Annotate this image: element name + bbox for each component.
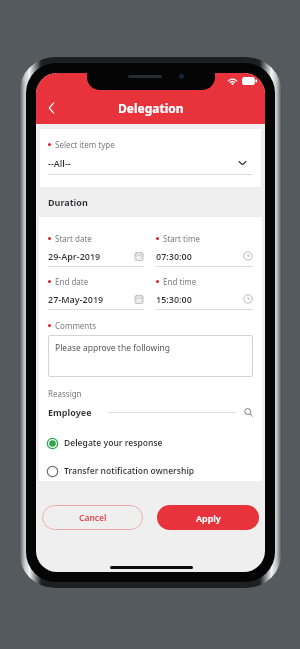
staticText: Select item type bbox=[55, 139, 115, 150]
button[interactable]: Apply bbox=[157, 505, 259, 530]
staticText: Duration bbox=[48, 196, 88, 208]
staticText: Apply bbox=[196, 512, 221, 524]
staticText: Delegation bbox=[118, 100, 184, 116]
button[interactable]: Please approve the following bbox=[48, 335, 253, 377]
staticText: Delegate your response bbox=[64, 437, 163, 449]
staticText: End time bbox=[163, 276, 197, 287]
staticText: Employee bbox=[48, 406, 92, 418]
staticText: 27-May-2019 bbox=[48, 293, 134, 305]
staticText: Transfer notification ownership bbox=[64, 465, 195, 477]
button[interactable]: Delegate your response bbox=[39, 436, 262, 450]
staticText: 07:30:00 bbox=[156, 250, 243, 262]
button[interactable]: Select item type bbox=[40, 129, 261, 187]
staticText: --All-- bbox=[48, 157, 71, 169]
staticText: Start time bbox=[163, 233, 200, 244]
button[interactable]: Transfer notification ownership bbox=[39, 464, 262, 478]
staticText: Comments bbox=[55, 320, 97, 331]
staticText: 15:30:00 bbox=[156, 293, 243, 305]
staticText: End date bbox=[55, 276, 89, 287]
button[interactable]: Cancel bbox=[42, 505, 143, 530]
staticText: Please approve the following bbox=[55, 342, 170, 354]
staticText: Cancel bbox=[79, 512, 107, 524]
other: Search bbox=[244, 408, 253, 417]
staticText: 29-Apr-2019 bbox=[48, 250, 134, 262]
staticText: Reassign bbox=[48, 388, 82, 399]
button[interactable]: Back bbox=[40, 97, 62, 119]
staticText: Start date bbox=[55, 233, 92, 244]
